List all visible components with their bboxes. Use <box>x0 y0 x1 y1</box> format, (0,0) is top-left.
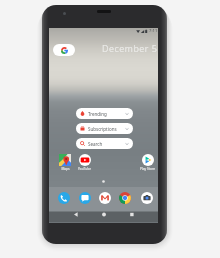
staticText: Maps <box>61 167 70 171</box>
button[interactable]: Trending <box>76 108 133 119</box>
button[interactable]: Google Search <box>53 44 75 56</box>
staticText: Subscriptions <box>88 126 117 132</box>
button[interactable]: Messages <box>79 192 91 204</box>
button[interactable]: Play Store <box>137 154 157 171</box>
staticText: Play Store <box>140 167 155 171</box>
button[interactable]: Camera <box>141 192 153 204</box>
staticText: December 5 <box>102 42 158 54</box>
button[interactable]: Search <box>76 138 133 149</box>
button[interactable]: Gmail <box>99 192 111 204</box>
staticText: Trending <box>88 111 107 117</box>
staticText: YouTube <box>78 167 91 171</box>
button[interactable]: YouTube <box>74 154 94 171</box>
button[interactable]: Phone <box>58 192 70 204</box>
staticText: 7:11 <box>149 28 158 34</box>
button[interactable]: Maps <box>55 154 75 171</box>
button[interactable]: Subscriptions <box>76 123 133 134</box>
staticText: Search <box>88 141 103 147</box>
button[interactable]: Chrome <box>119 192 131 204</box>
